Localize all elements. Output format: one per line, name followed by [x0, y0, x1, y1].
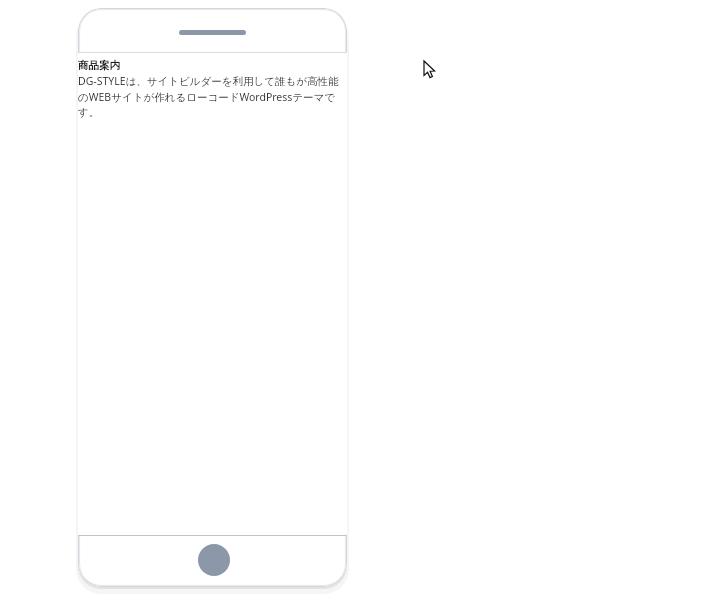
- button[interactable]: Home: [198, 544, 230, 576]
- button[interactable]: 商品案内: [78, 59, 344, 72]
- staticText: DG-STYLEは、サイトビルダーを利用して誰もが高性能のWEBサイトが作れるロ…: [78, 74, 344, 119]
- staticText: 商品案内: [78, 59, 120, 72]
- button[interactable]: DG-STYLEは、サイトビルダーを利用して誰もが高性能のWEBサイトが作れるロ…: [78, 74, 344, 119]
